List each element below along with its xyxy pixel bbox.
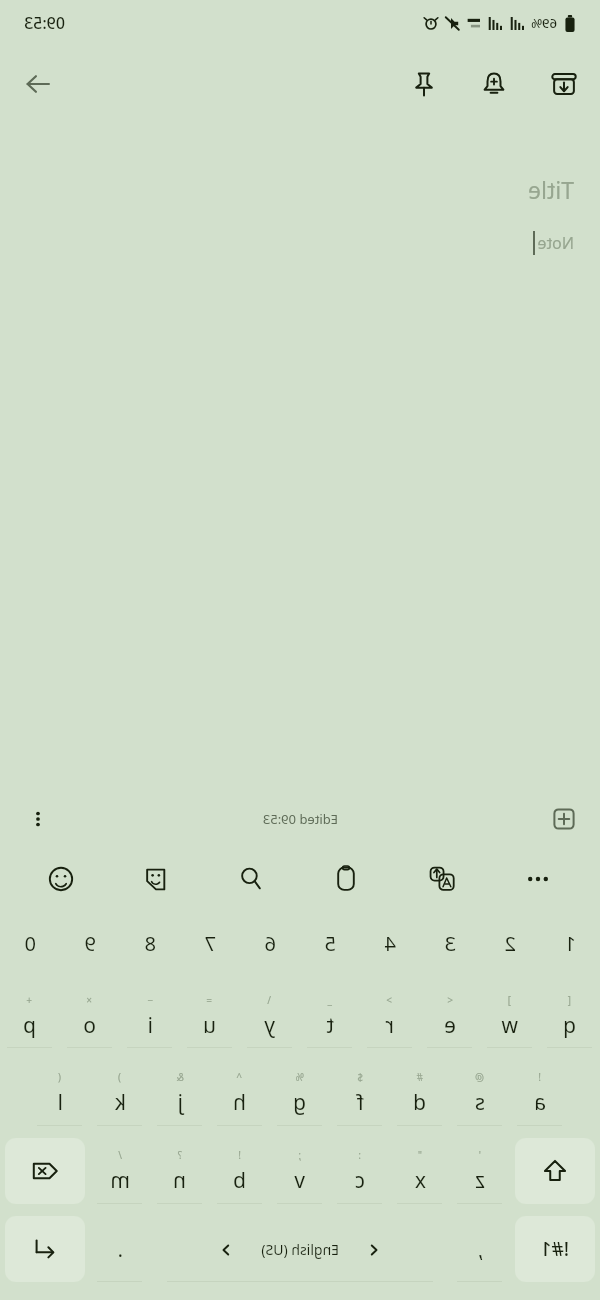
button[interactable]: English (US) (152, 1216, 448, 1282)
staticText: q (563, 1011, 576, 1040)
staticText: 4 (384, 930, 396, 957)
staticText: English (US) (261, 1240, 339, 1259)
button[interactable]: . (92, 1216, 148, 1282)
staticText: # (416, 1070, 423, 1084)
staticText: 7 (204, 930, 216, 957)
staticText: × (86, 993, 92, 1007)
staticText: ? (177, 1148, 182, 1162)
button[interactable]: More options (516, 857, 560, 901)
button[interactable]: 3 (422, 914, 478, 972)
button[interactable]: Back (14, 60, 62, 108)
button[interactable]: Title (26, 174, 574, 205)
button[interactable]: Translate (420, 857, 464, 901)
staticText: r (385, 1011, 394, 1040)
staticText: e (444, 1011, 456, 1040)
button[interactable]: + (2, 984, 58, 1048)
button[interactable]: ! (512, 1060, 568, 1126)
staticText: $ (357, 1070, 363, 1084)
staticText: 5 (324, 930, 336, 957)
staticText: v (294, 1166, 305, 1195)
button[interactable]: _ (302, 984, 358, 1048)
button[interactable]: Backspace (5, 1138, 85, 1204)
staticText: & (176, 1070, 184, 1084)
staticText: ] (507, 993, 511, 1007)
staticText: < (447, 993, 453, 1007)
button[interactable]: 9 (62, 914, 118, 972)
button[interactable]: : (332, 1138, 388, 1204)
button[interactable]: > (362, 984, 418, 1048)
staticText: 69% (531, 14, 557, 32)
button[interactable]: Emoji (39, 857, 83, 901)
button[interactable]: ) (92, 1060, 148, 1126)
staticText: = (206, 993, 212, 1007)
button[interactable]: / (92, 1138, 148, 1204)
staticText: > (386, 993, 392, 1007)
button[interactable]: More options (16, 797, 60, 841)
button[interactable]: % (272, 1060, 328, 1126)
staticText: w (501, 1011, 518, 1040)
button[interactable]: [ (542, 984, 598, 1048)
staticText: " (417, 1148, 422, 1162)
staticText: i (147, 1011, 153, 1040)
staticText: , (477, 1236, 483, 1263)
staticText: n (173, 1166, 186, 1195)
button[interactable]: ; (272, 1138, 328, 1204)
button[interactable]: ? (152, 1138, 208, 1204)
button[interactable]: × (62, 984, 118, 1048)
button[interactable]: $ (332, 1060, 388, 1126)
button[interactable]: 4 (362, 914, 418, 972)
button[interactable]: " (392, 1138, 448, 1204)
button[interactable]: , (452, 1216, 508, 1282)
staticText: ^ (236, 1070, 242, 1084)
staticText: s (474, 1088, 485, 1117)
staticText: ! (238, 1148, 241, 1162)
staticText: 8 (144, 930, 156, 957)
staticText: 9 (84, 930, 96, 957)
button[interactable]: 2 (482, 914, 538, 972)
button[interactable]: ] (482, 984, 538, 1048)
button[interactable]: 0 (2, 914, 58, 972)
staticText: a (534, 1088, 546, 1117)
staticText: : (358, 1148, 361, 1162)
button[interactable]: Search (229, 857, 273, 901)
button[interactable]: − (122, 984, 178, 1048)
staticText: @ (475, 1070, 484, 1084)
staticText: Note (537, 232, 574, 254)
staticText: h (233, 1088, 246, 1117)
button[interactable]: Archive (540, 60, 588, 108)
button[interactable]: 7 (182, 914, 238, 972)
button[interactable]: = (182, 984, 238, 1048)
staticText: y (264, 1011, 275, 1040)
button[interactable]: Note (26, 231, 574, 255)
button[interactable]: ^ (212, 1060, 268, 1126)
staticText: d (413, 1088, 426, 1117)
button[interactable]: @ (452, 1060, 508, 1126)
button[interactable]: Add reminder (470, 60, 518, 108)
staticText: . (117, 1236, 123, 1263)
button[interactable]: # (392, 1060, 448, 1126)
button[interactable]: Shift (515, 1138, 595, 1204)
button[interactable]: Pin note (400, 60, 448, 108)
button[interactable]: ( (32, 1060, 88, 1126)
button[interactable]: \ (242, 984, 298, 1048)
button[interactable]: 6 (242, 914, 298, 972)
staticText: % (295, 1070, 304, 1084)
button[interactable]: ' (452, 1138, 508, 1204)
button[interactable]: 5 (302, 914, 358, 972)
staticText: / (118, 1148, 122, 1162)
button[interactable]: Stickers (134, 857, 178, 901)
staticText: − (147, 993, 153, 1007)
staticText: o (83, 1011, 96, 1040)
button[interactable]: & (152, 1060, 208, 1126)
button[interactable]: 8 (122, 914, 178, 972)
button[interactable]: Clipboard (324, 857, 368, 901)
button[interactable]: Enter (5, 1216, 85, 1282)
button[interactable]: Add (542, 797, 586, 841)
staticText: 3 (444, 930, 456, 957)
button[interactable]: !#1 (515, 1216, 595, 1282)
button[interactable]: ! (212, 1138, 268, 1204)
button[interactable]: < (422, 984, 478, 1048)
staticText: z (475, 1166, 485, 1195)
button[interactable]: 1 (542, 914, 598, 972)
staticText: 0 (24, 930, 36, 957)
